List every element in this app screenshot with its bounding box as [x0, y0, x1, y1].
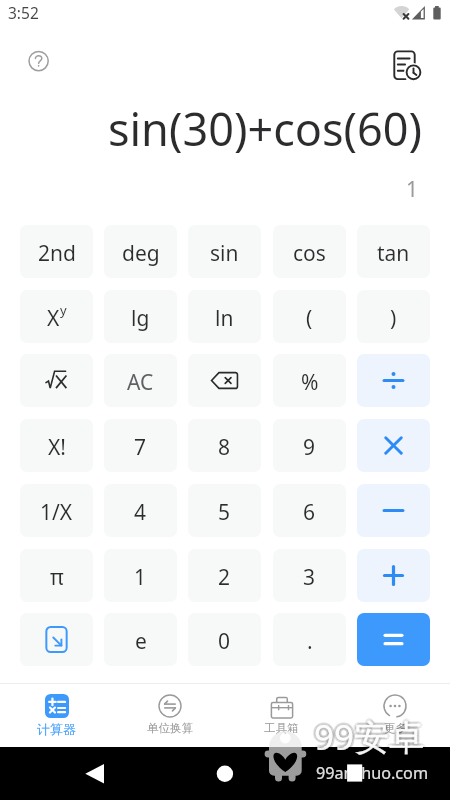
staticText: 计算器 [37, 721, 76, 737]
button[interactable]: AC [104, 354, 177, 407]
staticText: 4 [134, 498, 147, 527]
button[interactable] [188, 354, 261, 407]
staticText: 3:52 [8, 2, 39, 23]
staticText: 99安卓 [312, 711, 423, 759]
button[interactable] [20, 354, 93, 407]
staticText: AC [127, 368, 154, 397]
button[interactable]: sin [188, 225, 261, 278]
button[interactable]: ) [357, 290, 430, 343]
staticText: 3 [303, 563, 316, 592]
button[interactable]: ( [273, 290, 346, 343]
button[interactable]: 7 [104, 419, 177, 472]
staticText: 9 [303, 433, 316, 462]
staticText: ( [306, 304, 313, 333]
staticText: 99安卓 [314, 710, 425, 758]
button[interactable]: cos [273, 225, 346, 278]
staticText: sin [210, 239, 239, 268]
staticText: 0 [218, 627, 231, 656]
button[interactable]: 3 [273, 549, 346, 602]
staticText: 1 [134, 563, 147, 592]
staticText: ) [390, 304, 397, 333]
button[interactable]: lg [104, 290, 177, 343]
staticText: 99anzhuo.com [316, 762, 429, 784]
button[interactable]: % [273, 354, 346, 407]
button[interactable]: 0 [188, 613, 261, 666]
staticText: 99安卓 [314, 716, 425, 764]
button[interactable] [357, 613, 430, 666]
button[interactable]: 工具箱 [225, 684, 338, 747]
staticText: tan [377, 239, 410, 268]
staticText: . [307, 627, 313, 656]
staticText: 99安卓 [317, 713, 428, 761]
button[interactable]: tan [357, 225, 430, 278]
staticText: 7 [134, 433, 147, 462]
button[interactable]: deg [104, 225, 177, 278]
button[interactable]: 6 [273, 484, 346, 537]
button[interactable]: e [104, 613, 177, 666]
button[interactable] [357, 484, 430, 537]
staticText: 99安卓 [314, 713, 425, 761]
staticText: π [50, 563, 64, 592]
staticText: 99安卓 [316, 711, 427, 759]
button[interactable]: X! [20, 419, 93, 472]
staticText: X! [48, 433, 66, 462]
button[interactable]: 5 [188, 484, 261, 537]
staticText: cos [293, 239, 326, 268]
button[interactable]: 计算器 [0, 684, 113, 747]
button[interactable]: 4 [104, 484, 177, 537]
button[interactable] [357, 419, 430, 472]
staticText: 99安卓 [312, 715, 423, 763]
staticText: 工具箱 [264, 721, 299, 735]
button[interactable] [357, 549, 430, 602]
staticText: e [135, 627, 147, 656]
staticText: 2nd [38, 239, 76, 268]
staticText: sin(30)+cos(60) [107, 98, 422, 159]
staticText: % [301, 368, 319, 397]
button[interactable]: 2nd [20, 225, 93, 278]
button[interactable]: X [20, 290, 93, 343]
button[interactable]: 更多 [338, 684, 450, 747]
button[interactable]: History [388, 44, 426, 82]
button[interactable]: π [20, 549, 93, 602]
staticText: X [47, 304, 60, 333]
button[interactable]: 单位换算 [113, 684, 226, 747]
button[interactable]: ln [188, 290, 261, 343]
staticText: 8 [218, 433, 231, 462]
staticText: 更多 [384, 721, 407, 735]
staticText: 6 [303, 498, 316, 527]
button[interactable]: Help [22, 44, 56, 78]
staticText: 5 [218, 498, 231, 527]
staticText: 99安卓 [311, 713, 422, 761]
staticText: 1 [405, 175, 418, 204]
staticText: 99安卓 [316, 715, 427, 763]
button[interactable]: . [273, 613, 346, 666]
button[interactable]: 2 [188, 549, 261, 602]
staticText: deg [122, 239, 160, 268]
button[interactable]: 1/X [20, 484, 93, 537]
staticText: y [60, 301, 67, 319]
staticText: lg [131, 304, 150, 333]
button[interactable] [20, 613, 93, 666]
button[interactable]: 1 [104, 549, 177, 602]
button[interactable]: 8 [188, 419, 261, 472]
staticText: 单位换算 [147, 721, 193, 735]
button[interactable] [357, 354, 430, 407]
staticText: 1/X [40, 498, 73, 527]
staticText: 2 [218, 563, 231, 592]
staticText: ln [215, 304, 234, 333]
button[interactable]: 9 [273, 419, 346, 472]
